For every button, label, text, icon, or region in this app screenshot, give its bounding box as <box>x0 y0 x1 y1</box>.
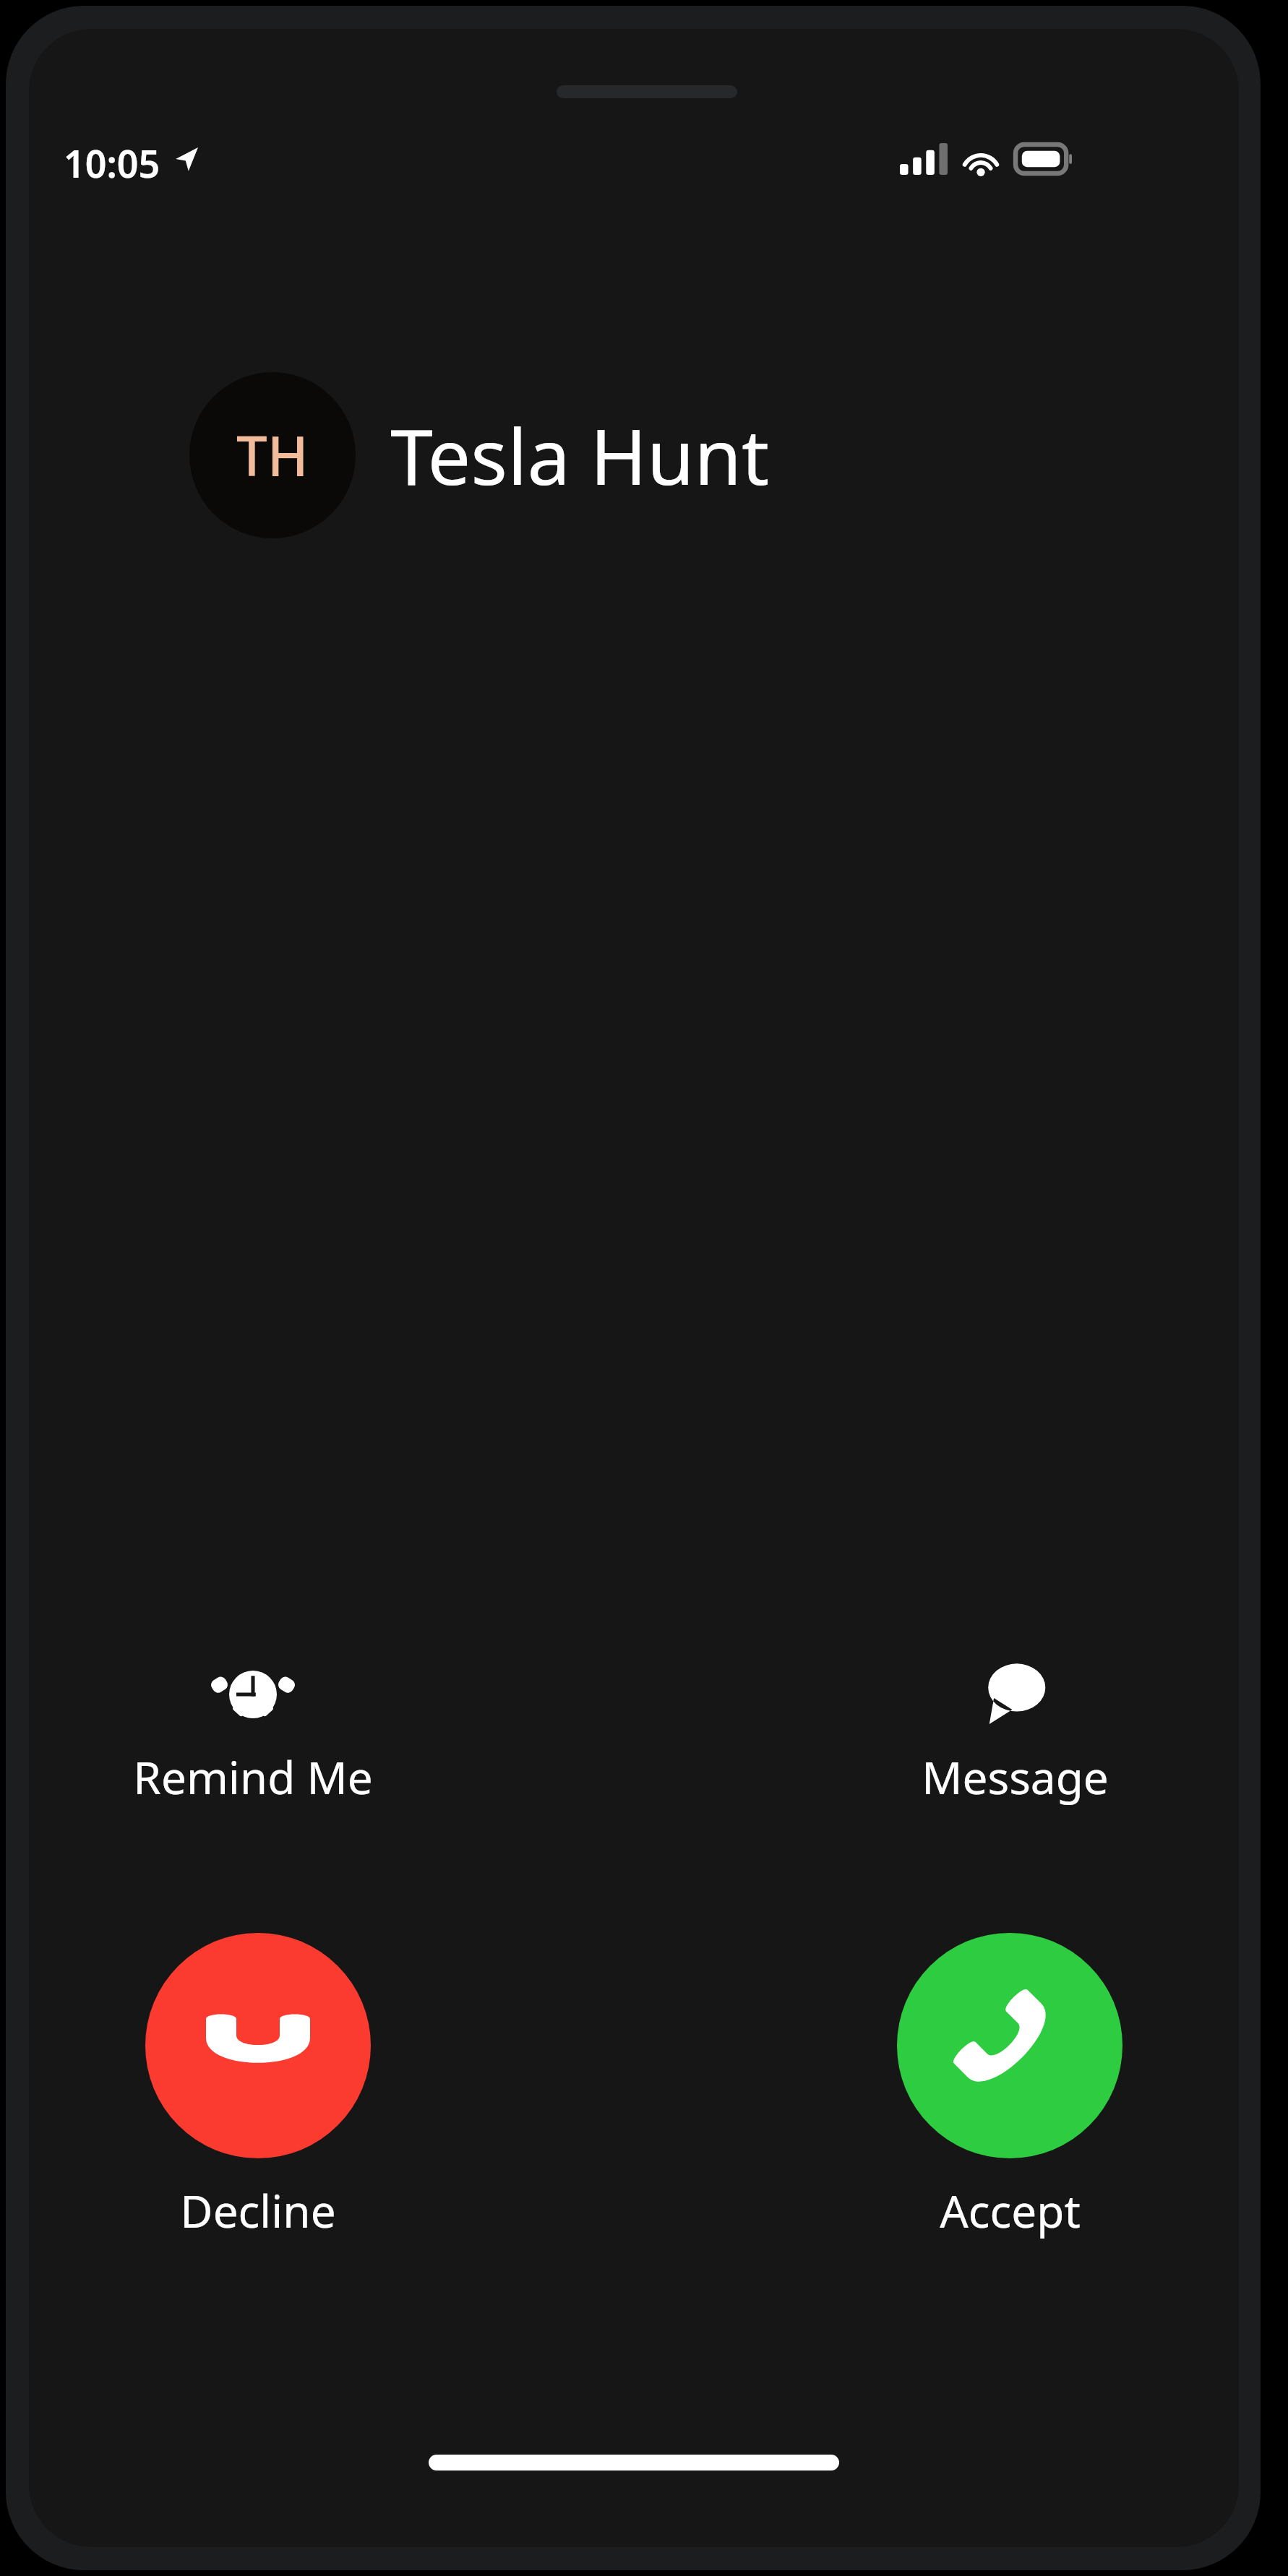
staticText: Decline <box>180 2180 336 2241</box>
button[interactable]: Decline <box>139 1933 377 2241</box>
other: Decline <box>145 1933 371 2158</box>
button[interactable]: TH <box>189 372 770 538</box>
button[interactable]: Accept <box>890 1933 1129 2241</box>
other: Accept <box>897 1933 1122 2158</box>
button[interactable]: Message <box>885 1651 1145 1813</box>
button[interactable]: Remind Me <box>123 1651 383 1813</box>
other: Remind Me <box>218 1657 288 1726</box>
staticText: Remind Me <box>133 1746 373 1807</box>
staticText: Tesla Hunt <box>390 403 770 507</box>
other: Message <box>980 1657 1049 1726</box>
staticText: 10:05 <box>64 137 160 181</box>
staticText: Message <box>922 1746 1109 1807</box>
staticText: Accept <box>940 2180 1081 2241</box>
staticText: TH <box>236 418 309 493</box>
